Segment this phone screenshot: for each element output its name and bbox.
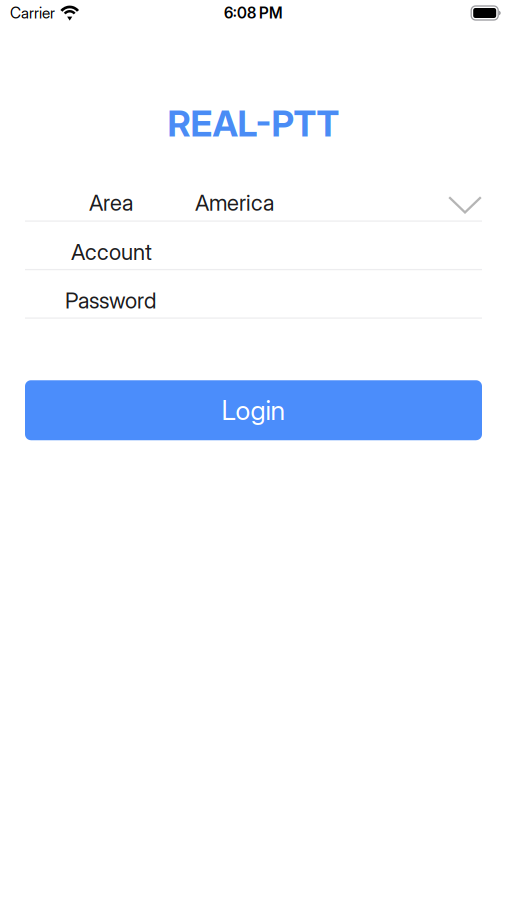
staticText: Account [71,239,152,265]
staticText: Area [89,189,133,216]
staticText: Carrier [10,4,55,22]
staticText: 6:08 PM [224,4,283,22]
staticText: Password [65,287,156,314]
button[interactable]: Area [25,173,482,220]
staticText: America [195,189,274,216]
button[interactable]: Login [25,380,482,440]
button[interactable]: Account [25,222,482,269]
button[interactable]: Password [25,270,482,317]
staticText: REAL-PTT [167,102,339,145]
staticText: Login [221,394,285,426]
